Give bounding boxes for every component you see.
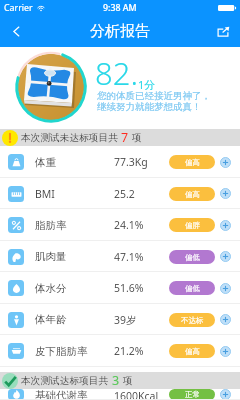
button[interactable]: 体重 — [0, 146, 240, 178]
staticText: Carrier — [4, 2, 33, 14]
staticText: 7 — [121, 129, 129, 146]
staticText: 82. — [95, 52, 138, 94]
button[interactable]: 肌肉量 — [0, 241, 240, 272]
button[interactable]: 基础代谢率 — [0, 389, 240, 400]
staticText: 项 — [123, 375, 133, 387]
button[interactable]: 皮下脂肪率 — [0, 335, 240, 367]
staticText: 脂肪率 — [35, 219, 67, 232]
staticText: BMI — [35, 187, 55, 201]
staticText: 体重 — [35, 156, 56, 169]
staticText: 正常 — [185, 390, 200, 399]
staticText: 51.6% — [114, 281, 144, 295]
staticText: 偏胖 — [185, 221, 200, 230]
staticText: 1分 — [138, 77, 156, 92]
staticText: 47.1% — [114, 250, 144, 264]
staticText: 皮下脂肪率 — [35, 345, 88, 358]
button[interactable]: Share — [206, 16, 240, 47]
staticText: 3 — [112, 372, 120, 389]
staticText: 偏高 — [185, 347, 200, 356]
staticText: 1600Kcal — [114, 389, 159, 400]
staticText: 您的体质已经接近男神了， 继续努力就能梦想成真！ — [97, 90, 211, 113]
staticText: 本次测试达标项目共 — [21, 375, 109, 387]
staticText: 项 — [132, 132, 142, 144]
staticText: 不达标 — [181, 316, 204, 325]
staticText: 基础代谢率 — [35, 389, 88, 400]
staticText: 偏低 — [185, 284, 200, 293]
staticText: 21.2% — [114, 344, 144, 358]
staticText: 9:38 AM — [103, 2, 137, 14]
staticText: 体年龄 — [35, 313, 67, 326]
staticText: 77.3Kg — [114, 155, 148, 169]
button[interactable]: 脂肪率 — [0, 209, 240, 241]
button[interactable]: 体年龄 — [0, 304, 240, 335]
staticText: 25.2 — [114, 187, 135, 201]
staticText: 偏高 — [185, 190, 200, 199]
staticText: 体水分 — [35, 282, 67, 295]
button[interactable]: 体水分 — [0, 272, 240, 304]
button[interactable]: BMI — [0, 178, 240, 209]
staticText: 24.1% — [114, 218, 144, 232]
staticText: 偏低 — [185, 253, 200, 262]
staticText: 肌肉量 — [35, 250, 67, 263]
staticText: 本次测试未达标项目共 — [21, 132, 118, 144]
staticText: 分析报告 — [90, 22, 150, 41]
staticText: 偏高 — [185, 158, 200, 167]
button[interactable]: Back — [0, 16, 32, 47]
staticText: 39岁 — [114, 313, 137, 327]
